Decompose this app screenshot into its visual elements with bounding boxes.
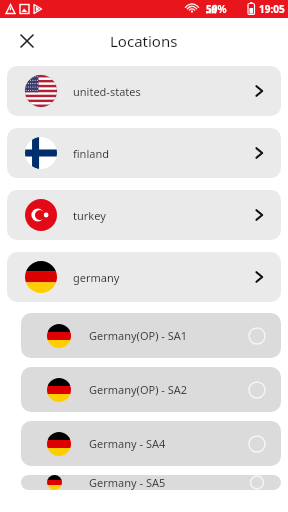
staticText: finland [73,146,251,161]
staticText: 59% [206,2,227,16]
staticText: united-states [73,84,251,99]
staticText: germany [73,270,251,285]
staticText: Germany(OP) - SA1 [89,328,248,343]
staticText: turkey [73,208,251,223]
button[interactable]: Germany - SA5 [21,475,281,490]
staticText: Germany(OP) - SA2 [89,382,248,397]
button[interactable]: Close [14,28,40,54]
button[interactable]: Germany(OP) - SA1 [21,313,281,358]
button[interactable]: turkey [7,190,281,240]
staticText: Germany - SA4 [89,436,248,451]
staticText: Locations [110,31,178,51]
button[interactable]: Germany(OP) - SA2 [21,367,281,412]
button[interactable]: finland [7,128,281,178]
button[interactable]: germany [7,252,281,302]
staticText: Germany - SA5 [89,475,248,490]
button[interactable]: united-states [7,66,281,116]
button[interactable]: Germany - SA4 [21,421,281,466]
staticText: 19:05 [259,2,285,16]
